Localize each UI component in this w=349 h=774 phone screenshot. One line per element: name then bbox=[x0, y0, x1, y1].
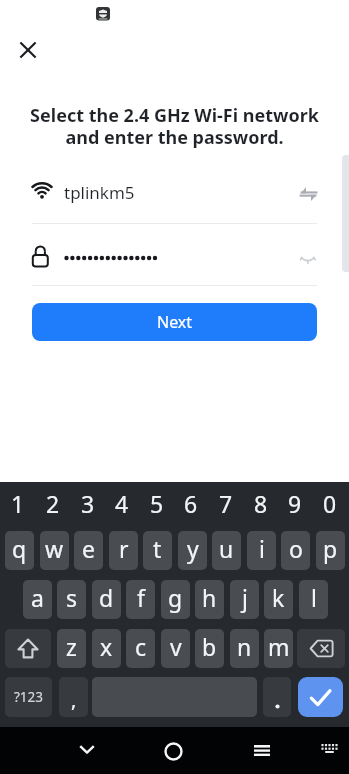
staticText: 7 bbox=[219, 488, 233, 519]
button[interactable]: y bbox=[178, 531, 207, 570]
staticText: n bbox=[237, 631, 252, 662]
button[interactable]: , bbox=[59, 677, 88, 717]
staticText: , bbox=[71, 686, 77, 713]
staticText: 3 bbox=[81, 488, 95, 519]
button[interactable]: 1 bbox=[1, 484, 35, 523]
staticText: b bbox=[202, 631, 217, 662]
button[interactable]: Next bbox=[32, 303, 317, 341]
button[interactable]: n bbox=[230, 629, 259, 668]
button[interactable]: f bbox=[126, 580, 155, 619]
staticText: z bbox=[66, 631, 77, 662]
button[interactable] bbox=[14, 36, 42, 64]
staticText: 1 bbox=[11, 488, 25, 519]
staticText: i bbox=[259, 533, 265, 564]
button[interactable]: w bbox=[40, 531, 69, 570]
button[interactable] bbox=[319, 738, 340, 759]
button[interactable] bbox=[71, 734, 102, 764]
staticText: u bbox=[219, 533, 234, 564]
staticText: x bbox=[100, 631, 113, 662]
button[interactable]: 0 bbox=[313, 484, 347, 523]
staticText: 9 bbox=[288, 488, 302, 519]
button[interactable]: x bbox=[92, 629, 121, 668]
button[interactable]: 8 bbox=[244, 484, 278, 523]
button[interactable]: t bbox=[143, 531, 172, 570]
staticText: a bbox=[31, 582, 44, 613]
staticText: t bbox=[153, 533, 162, 564]
button[interactable] bbox=[158, 736, 189, 766]
staticText: m bbox=[268, 631, 290, 662]
staticText: p bbox=[323, 533, 338, 564]
button[interactable]: h bbox=[195, 580, 224, 619]
button[interactable]: d bbox=[92, 580, 121, 619]
staticText: y bbox=[187, 533, 199, 564]
button[interactable]: 6 bbox=[174, 484, 208, 523]
button[interactable]: v bbox=[161, 629, 190, 668]
button[interactable] bbox=[298, 677, 343, 717]
staticText: l bbox=[311, 582, 317, 613]
button[interactable]: r bbox=[109, 531, 138, 570]
button[interactable]: u bbox=[212, 531, 241, 570]
button[interactable]: k bbox=[264, 580, 293, 619]
button[interactable] bbox=[297, 629, 345, 668]
button[interactable]: p bbox=[316, 531, 345, 570]
staticText: h bbox=[202, 582, 217, 613]
button[interactable]: j bbox=[230, 580, 259, 619]
button[interactable]: 3 bbox=[71, 484, 105, 523]
staticText: Select the 2.4 GHz Wi-Fi network and ent… bbox=[0, 103, 349, 150]
button[interactable]: o bbox=[281, 531, 310, 570]
staticText: 4 bbox=[115, 488, 129, 519]
button[interactable]: l bbox=[299, 580, 328, 619]
staticText: 8 bbox=[254, 488, 268, 519]
staticText: c bbox=[135, 631, 147, 662]
staticText: v bbox=[170, 631, 182, 662]
staticText: w bbox=[45, 533, 64, 564]
button[interactable]: ?123 bbox=[5, 677, 52, 717]
button[interactable]: z bbox=[57, 629, 86, 668]
button[interactable]: 7 bbox=[209, 484, 243, 523]
button[interactable] bbox=[20, 234, 330, 285]
staticText: 6 bbox=[184, 488, 198, 519]
button[interactable]: i bbox=[247, 531, 276, 570]
staticText: d bbox=[99, 582, 114, 613]
button[interactable]: q bbox=[5, 531, 34, 570]
staticText: g bbox=[168, 582, 183, 613]
button[interactable]: b bbox=[195, 629, 224, 668]
button[interactable]: 2 bbox=[36, 484, 70, 523]
staticText: ?123 bbox=[14, 688, 44, 706]
button[interactable]: g bbox=[161, 580, 190, 619]
button[interactable] bbox=[263, 677, 291, 717]
staticText: q bbox=[12, 533, 27, 564]
staticText: e bbox=[82, 533, 95, 564]
staticText: j bbox=[242, 582, 248, 613]
button[interactable]: 5 bbox=[140, 484, 174, 523]
button[interactable]: a bbox=[23, 580, 52, 619]
button[interactable] bbox=[20, 172, 330, 223]
button[interactable]: 4 bbox=[105, 484, 139, 523]
button[interactable]: c bbox=[126, 629, 155, 668]
button[interactable]: m bbox=[264, 629, 293, 668]
button[interactable] bbox=[246, 735, 277, 765]
staticText: Next bbox=[157, 311, 193, 333]
staticText: 5 bbox=[150, 488, 164, 519]
button[interactable]: s bbox=[57, 580, 86, 619]
staticText: 2 bbox=[46, 488, 60, 519]
button[interactable]: 9 bbox=[278, 484, 312, 523]
staticText: s bbox=[66, 582, 78, 613]
button[interactable]: e bbox=[74, 531, 103, 570]
staticText: f bbox=[137, 582, 145, 613]
staticText: k bbox=[272, 582, 285, 613]
staticText: tplinkm5 bbox=[64, 181, 135, 204]
staticText: o bbox=[289, 533, 303, 564]
staticText: r bbox=[119, 533, 129, 564]
button[interactable] bbox=[5, 629, 51, 668]
staticText: 0 bbox=[323, 488, 337, 519]
